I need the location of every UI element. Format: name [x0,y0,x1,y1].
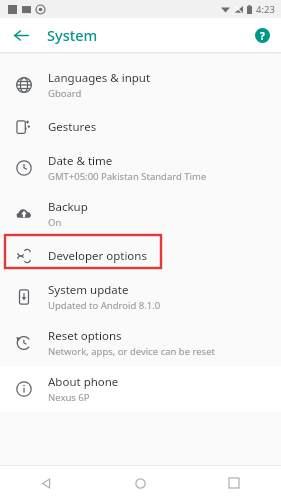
button[interactable]: About phone [0,366,281,412]
button[interactable]: Home [93,466,187,500]
button[interactable]: Developer options [0,237,281,274]
staticText: Languages & input [48,70,151,86]
staticText: ? [260,29,265,43]
button[interactable]: Reset options [0,320,281,366]
staticText: On [48,216,62,229]
staticText: Gestures [48,119,97,135]
button[interactable]: Languages & input [0,62,281,108]
button[interactable]: Back [8,22,34,48]
staticText: GMT+05:00 Pakistan Standard Time [48,170,207,183]
staticText: Developer options [48,248,147,264]
staticText: Reset options [48,328,122,344]
staticText: System update [48,282,129,298]
staticText: About phone [48,374,119,390]
button[interactable]: Gestures [0,108,281,145]
staticText: Nexus 6P [48,391,90,404]
staticText: System [47,25,98,45]
staticText: 4:23 [256,3,275,16]
staticText: Updated to Android 8.1.0 [48,299,161,312]
button[interactable]: System update [0,274,281,320]
button[interactable]: Recent apps [187,466,281,500]
button[interactable]: Date & time [0,145,281,191]
staticText: Network, apps, or device can be reset [48,345,215,358]
staticText: Date & time [48,153,113,169]
staticText: Backup [48,199,88,215]
staticText: Gboard [48,87,82,100]
button[interactable]: Help [250,23,274,47]
button[interactable]: Backup [0,191,281,237]
button[interactable]: Back [0,466,93,500]
